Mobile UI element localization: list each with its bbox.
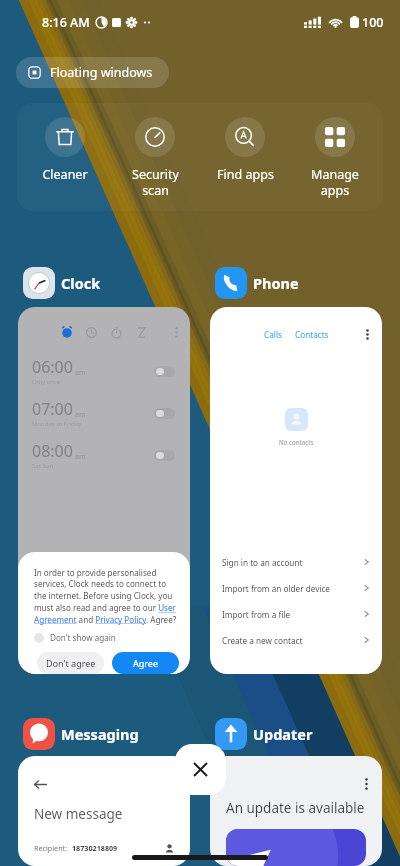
button[interactable]: Security scan [113, 117, 197, 198]
button[interactable]: Find apps [203, 117, 287, 183]
staticText: am [75, 410, 86, 420]
button[interactable]: Import from an older device [210, 575, 382, 601]
staticText: Phone [253, 273, 299, 293]
staticText: Recipient: [34, 843, 68, 853]
staticText: Import from an older device [222, 583, 330, 594]
staticText: New message [34, 805, 123, 823]
staticText: 18730218809 [72, 843, 118, 853]
button[interactable]: Floating windows [16, 57, 169, 88]
staticText: 100 [362, 14, 384, 31]
button[interactable]: Don't agree [37, 652, 104, 674]
staticText: 08:00 [32, 440, 73, 462]
staticText: Contacts [295, 329, 329, 340]
staticText: Calls [264, 329, 282, 340]
staticText: Don't show again [50, 632, 116, 643]
button[interactable]: Import from a file [210, 601, 382, 627]
staticText: An update is available [226, 799, 365, 817]
button[interactable]: Cleaner [23, 117, 107, 183]
button[interactable]: Create a new contact [210, 627, 382, 653]
staticText: Monday to Friday [32, 420, 82, 428]
staticText: Clock [61, 273, 101, 293]
button[interactable]: Sign in to an account [210, 549, 382, 575]
staticText: No contacts [279, 438, 314, 446]
staticText: Only once [32, 378, 61, 386]
staticText: 07:00 [32, 398, 73, 420]
staticText: Cleaner [42, 166, 88, 183]
button[interactable]: Agree [112, 652, 179, 674]
staticText: 8:16 AM [42, 14, 90, 31]
button[interactable]: Don't show again [34, 632, 116, 643]
staticText: am [75, 452, 86, 462]
staticText: Find apps [217, 166, 274, 183]
button[interactable] [154, 366, 175, 377]
staticText: Manage apps [311, 166, 359, 198]
staticText: Sat Sun [32, 462, 54, 470]
button[interactable]: Close all apps [175, 744, 226, 795]
button[interactable] [154, 450, 175, 461]
button[interactable]: Manage apps [293, 117, 377, 198]
staticText: Import from a file [222, 609, 291, 620]
staticText: 06:00 [32, 356, 73, 378]
staticText: Agree [133, 657, 158, 669]
staticText: Messaging [61, 724, 139, 744]
staticText: Floating windows [50, 64, 153, 81]
staticText: Updater [253, 724, 313, 744]
staticText: am [75, 368, 86, 378]
button[interactable] [154, 408, 175, 419]
staticText: Create a new contact [222, 635, 303, 646]
staticText: Sign in to an account [222, 557, 303, 568]
staticText: Security scan [132, 166, 179, 198]
staticText: Don't agree [46, 657, 96, 669]
staticText: In order to provide personalised service… [34, 567, 179, 625]
